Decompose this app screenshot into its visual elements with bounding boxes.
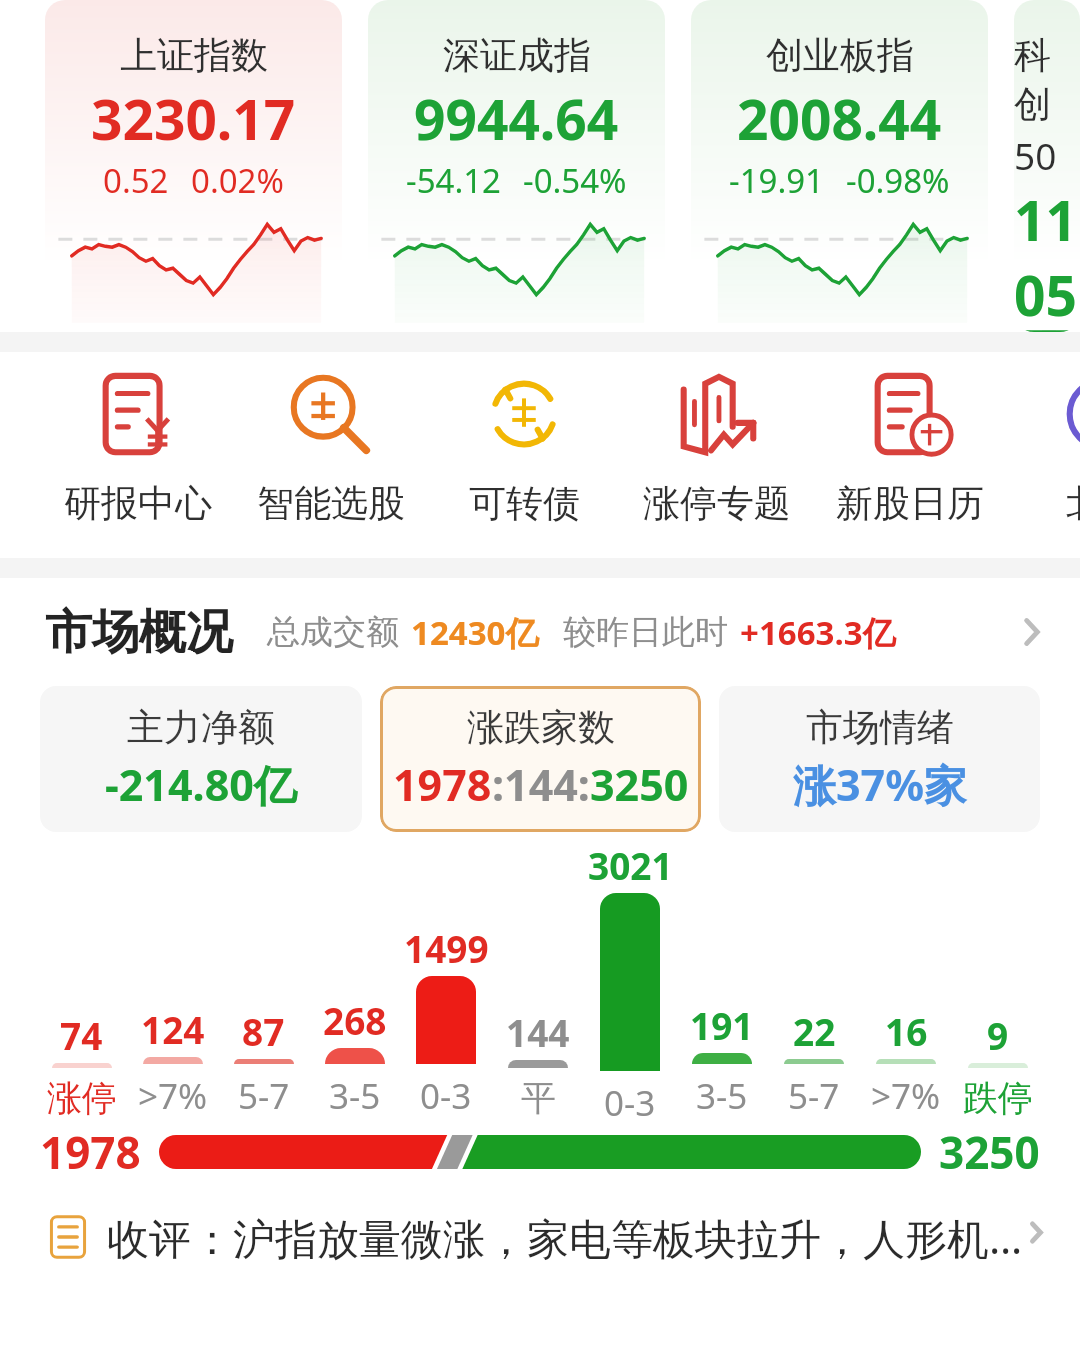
staticText: 124 (141, 1004, 205, 1054)
staticText: 22 (793, 1006, 836, 1056)
button[interactable]: 主力净额 (40, 686, 362, 832)
staticText: 1978 (393, 755, 492, 814)
button[interactable]: 涨停专题 (620, 352, 814, 558)
button[interactable]: 1978 (40, 1120, 1040, 1184)
staticText: 16 (885, 1006, 928, 1056)
staticText: 5-7 (238, 1072, 290, 1120)
staticText: >7% (871, 1072, 941, 1120)
staticText: 3021 (588, 840, 673, 890)
staticText: 深证成指 (443, 32, 591, 79)
button[interactable]: 收评：沪指放量微涨，家电等板块拉升，人形机… (45, 1196, 1050, 1278)
staticText: 涨37%家 (793, 755, 967, 814)
staticText: 主力净额 (127, 704, 275, 751)
staticText: 平 (521, 1076, 556, 1120)
staticText: -0.98% (846, 158, 950, 203)
staticText: 涨跌家数 (467, 704, 615, 751)
staticText: 0-3 (420, 1072, 472, 1120)
staticText: 涨停 (47, 1076, 117, 1120)
staticText: 9 (987, 1010, 1009, 1060)
staticText: -19.91 (729, 158, 824, 203)
staticText: 可转债 (469, 480, 580, 527)
staticText: 1978 (40, 1122, 141, 1182)
staticText: 智能选股 (257, 480, 405, 527)
button[interactable]: 智能选股 (234, 352, 428, 558)
staticText: 0-3 (604, 1079, 656, 1120)
staticText: 191 (690, 1000, 754, 1050)
other: 查看市场概况 (1014, 614, 1050, 650)
staticText: -214.80亿 (105, 755, 297, 814)
staticText: +1663.3亿 (740, 610, 896, 655)
button[interactable]: 创业板指 (691, 0, 988, 332)
staticText: 研报中心 (64, 480, 212, 527)
button[interactable]: 市场概况 (0, 578, 1080, 686)
staticText: 较昨日此时 (563, 611, 728, 653)
staticText: -54.12 (406, 158, 501, 203)
staticText: 5-7 (788, 1072, 840, 1120)
staticText: 收评：沪指放量微涨，家电等板块拉升，人形机… (107, 1209, 1023, 1266)
staticText: 跌停 (963, 1076, 1033, 1120)
staticText: 市场概况 (45, 603, 233, 662)
staticText: 创业板指 (766, 32, 914, 79)
button[interactable]: 涨跌家数 (380, 686, 701, 832)
button[interactable]: 新股日历 (813, 352, 1007, 558)
staticText: 1499 (404, 923, 489, 973)
staticText: 268 (323, 995, 387, 1045)
staticText: 北上 (1066, 480, 1080, 527)
staticText: 涨停专题 (643, 480, 791, 527)
staticText: 144 (506, 1007, 570, 1057)
staticText: 新股日历 (836, 480, 984, 527)
staticText: 9944.64 (414, 81, 619, 156)
button[interactable]: 深证成指 (368, 0, 665, 332)
staticText: 3250 (590, 755, 689, 814)
staticText: 0.02% (191, 158, 284, 203)
button[interactable]: 市场情绪 (719, 686, 1040, 832)
staticText: -0.54% (523, 158, 627, 203)
button[interactable]: 研报中心 (41, 352, 235, 558)
staticText: 2008.44 (737, 81, 942, 156)
other: 查看新闻详情 (1023, 1219, 1050, 1255)
staticText: 上证指数 (120, 32, 268, 79)
staticText: 74 (60, 1010, 103, 1060)
staticText: >7% (138, 1072, 208, 1120)
staticText: 0.52 (103, 158, 169, 203)
staticText: 市场情绪 (806, 704, 954, 751)
staticText: 87 (242, 1006, 285, 1056)
staticText: 1105.32 (1014, 182, 1080, 332)
staticText: 3-5 (696, 1072, 748, 1120)
staticText: 3250 (939, 1122, 1040, 1182)
staticText: 3-5 (329, 1072, 381, 1120)
staticText: 12430亿 (411, 610, 539, 655)
staticText: 总成交额 (267, 611, 399, 653)
staticText: 科创50 (1014, 32, 1080, 180)
staticText: :144: (492, 755, 590, 814)
staticText: 3230.17 (91, 81, 296, 156)
button[interactable]: 上证指数 (45, 0, 342, 332)
button[interactable]: 北上 (1006, 352, 1080, 558)
button[interactable]: 科创50 (1014, 0, 1080, 332)
button[interactable]: 可转债 (427, 352, 621, 558)
